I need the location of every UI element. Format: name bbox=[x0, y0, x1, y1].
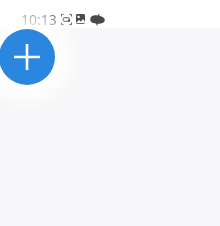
button[interactable]: Add bbox=[0, 29, 55, 85]
staticText: 10:13 bbox=[21, 10, 57, 29]
